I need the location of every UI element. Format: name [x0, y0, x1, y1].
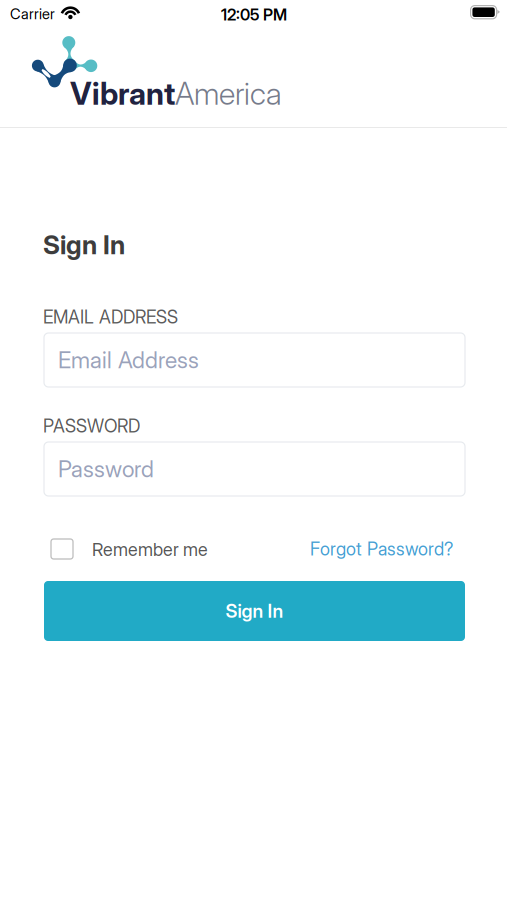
staticText: Forgot Password? — [310, 538, 453, 560]
staticText: America — [175, 75, 282, 112]
staticText: Sign In — [225, 600, 283, 622]
staticText: Remember me — [92, 539, 208, 560]
staticText: Email Address — [58, 346, 199, 374]
staticText: Vibrant — [70, 75, 175, 112]
staticText: Carrier — [10, 5, 55, 23]
staticText: Password — [58, 455, 154, 483]
staticText: Sign In — [43, 229, 125, 260]
staticText: EMAIL ADDRESS — [43, 306, 178, 328]
staticText: 12:05 PM — [221, 5, 287, 24]
staticText: PASSWORD — [43, 415, 140, 437]
button[interactable]: Remember me — [51, 537, 208, 561]
button[interactable]: Sign In — [44, 581, 465, 641]
button[interactable]: Forgot Password? — [310, 537, 453, 561]
